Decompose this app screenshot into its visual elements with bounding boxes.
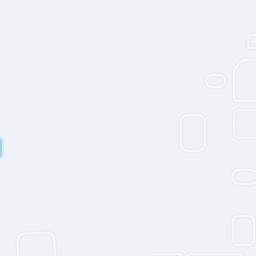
button[interactable]: Tag <box>206 75 225 87</box>
button[interactable]: Card 4 <box>181 115 205 151</box>
button[interactable]: Card 7 <box>18 233 55 256</box>
button[interactable]: Card 9 <box>186 254 244 256</box>
button[interactable]: Card 1 <box>248 35 256 48</box>
button[interactable]: Card 8 <box>150 254 183 256</box>
button[interactable]: Card 6 <box>233 216 254 245</box>
button[interactable]: Card 3 <box>234 110 256 138</box>
button[interactable]: Card 5 <box>232 170 256 184</box>
